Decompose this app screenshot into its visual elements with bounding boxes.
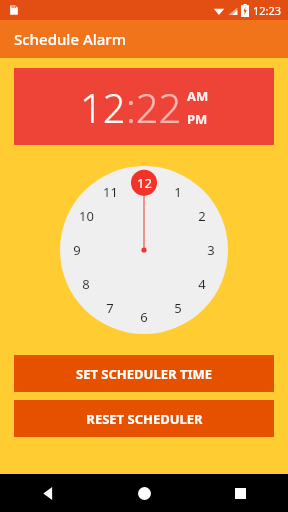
staticText: 3	[207, 241, 215, 259]
staticText: 12	[137, 174, 152, 192]
button[interactable]: Back	[0, 474, 96, 512]
staticText: 7	[106, 299, 114, 317]
button[interactable]: 12	[14, 68, 274, 145]
staticText: 2	[198, 207, 206, 225]
staticText: 11	[103, 183, 118, 201]
staticText: 8	[82, 275, 90, 293]
staticText: 4	[198, 275, 206, 293]
staticText: 12:23	[253, 3, 282, 18]
staticText: 1	[174, 183, 182, 201]
button[interactable]: Recent apps	[192, 474, 288, 512]
button[interactable]: SET SCHEDULER TIME	[14, 355, 274, 392]
staticText: :22	[126, 80, 182, 134]
button[interactable]: Home	[96, 474, 192, 512]
staticText: 5	[174, 299, 182, 317]
staticText: 9	[73, 241, 81, 259]
staticText: 10	[79, 207, 94, 225]
staticText: PM	[187, 110, 208, 128]
staticText: 6	[140, 308, 148, 326]
staticText: AM	[187, 87, 209, 105]
staticText: Schedule Alarm	[14, 29, 126, 49]
staticText: RESET SCHEDULER	[86, 410, 203, 428]
staticText: 12	[80, 80, 126, 134]
staticText: SET SCHEDULER TIME	[76, 365, 212, 383]
button[interactable]: RESET SCHEDULER	[14, 400, 274, 437]
